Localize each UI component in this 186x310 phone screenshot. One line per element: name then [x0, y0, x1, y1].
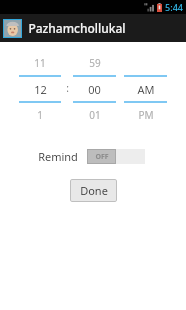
button[interactable]: AM PM [124, 54, 167, 124]
staticText: AM [137, 82, 155, 97]
staticText: OFF [95, 152, 109, 162]
staticText: 12 [34, 82, 47, 97]
button[interactable]: Minute [73, 54, 116, 124]
button[interactable]: App icon [4, 20, 21, 37]
staticText: 5:44 [165, 1, 183, 13]
staticText: 01 [89, 108, 101, 122]
button[interactable]: Remind toggle, off [87, 149, 145, 164]
staticText: 00 [88, 82, 101, 97]
staticText: Done [80, 183, 108, 198]
staticText: Pazhamchollukal [28, 20, 126, 36]
button[interactable]: Done [70, 179, 117, 202]
staticText: : [66, 81, 69, 95]
staticText: PM [138, 108, 154, 122]
staticText: 1 [37, 108, 43, 122]
button[interactable]: Hour [19, 54, 61, 124]
staticText: 59 [89, 56, 101, 70]
staticText: Remind [38, 149, 78, 164]
staticText: 11 [34, 56, 46, 70]
